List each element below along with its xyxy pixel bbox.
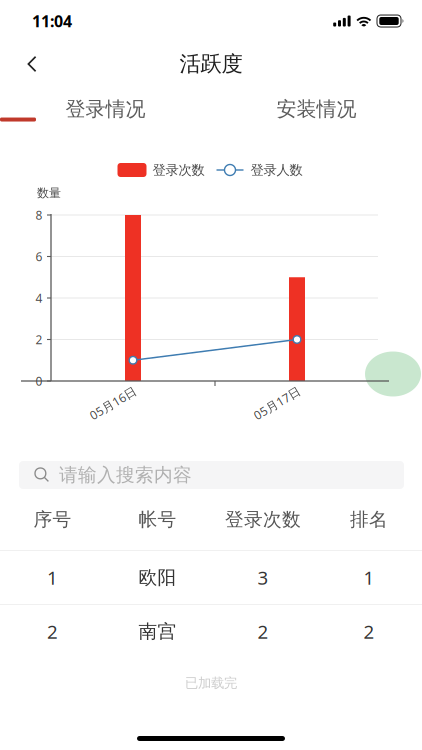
staticText: 登录次数 — [225, 508, 301, 531]
staticText: 2 — [363, 619, 374, 644]
staticText: 南宫 — [138, 620, 176, 643]
staticText: 欧阳 — [138, 566, 176, 589]
staticText: 安装情况 — [276, 97, 356, 121]
staticText: 2 — [257, 619, 268, 644]
staticText: 已加载完 — [185, 675, 237, 691]
button[interactable]: 2 — [0, 605, 422, 658]
staticText: 4 — [35, 290, 42, 306]
button[interactable]: 登录情况 — [0, 92, 211, 125]
staticText: 登录次数 — [152, 162, 204, 178]
staticText: 请输入搜索内容 — [59, 463, 192, 486]
button[interactable]: 安装情况 — [211, 92, 422, 125]
staticText: 活跃度 — [179, 51, 242, 77]
staticText: 0 — [35, 373, 42, 389]
staticText: 3 — [257, 565, 268, 590]
staticText: 05月17日 — [251, 395, 303, 411]
staticText: 帐号 — [138, 508, 176, 531]
staticText: 05月16日 — [87, 395, 139, 411]
staticText: 2 — [35, 331, 42, 347]
staticText: 数量 — [37, 186, 61, 200]
staticText: 11:04 — [32, 10, 72, 32]
staticText: 登录情况 — [65, 97, 145, 121]
button[interactable]: 1 — [0, 551, 422, 604]
staticText: 1 — [363, 565, 374, 590]
staticText: 8 — [35, 207, 42, 223]
staticText: 2 — [47, 619, 58, 644]
button[interactable]: 请输入搜索内容 — [19, 461, 404, 489]
staticText: 序号 — [33, 508, 71, 531]
staticText: 1 — [47, 565, 58, 590]
staticText: 6 — [35, 248, 42, 264]
button[interactable]: 返回 — [11, 42, 53, 86]
staticText: 登录人数 — [250, 162, 302, 178]
staticText: 排名 — [350, 508, 388, 531]
